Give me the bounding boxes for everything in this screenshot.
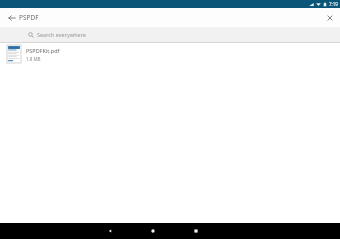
- staticText: 1.8 MB: [26, 56, 41, 62]
- staticText: PSPDF: [19, 13, 39, 22]
- button[interactable]: Back: [5, 11, 19, 25]
- button[interactable]: Recent apps: [186, 223, 206, 239]
- staticText: PSPDFKit.pdf: [26, 47, 60, 54]
- button[interactable]: Home: [143, 223, 163, 239]
- staticText: 7:19: [329, 1, 338, 7]
- staticText: Search everywhere: [37, 31, 86, 38]
- button[interactable]: Back: [100, 223, 120, 239]
- button[interactable]: Close: [323, 11, 337, 25]
- button[interactable]: PSPDFKit.pdf: [0, 43, 340, 65]
- button[interactable]: Search everywhere: [0, 27, 340, 42]
